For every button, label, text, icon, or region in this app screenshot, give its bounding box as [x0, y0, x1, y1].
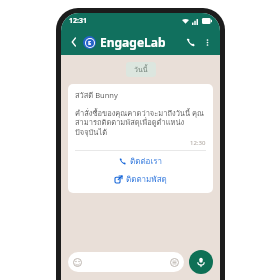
- staticText: ติดต่อเรา: [130, 155, 162, 168]
- staticText: 12:31: [69, 16, 87, 26]
- button[interactable]: More options: [200, 35, 214, 49]
- button[interactable]: Back: [67, 35, 81, 49]
- staticText: คำสั่งซื้อของคุณคาดว่าจะมาถึงวันนี้ คุณส…: [75, 107, 206, 139]
- staticText: วันนี้: [134, 64, 148, 75]
- button[interactable]: Voice message: [189, 250, 213, 274]
- button[interactable]: ติดตามพัสดุ: [75, 173, 206, 186]
- staticText: ติดตามพัสดุ: [126, 173, 167, 186]
- staticText: E: [88, 39, 92, 47]
- staticText: 12:30: [190, 139, 206, 147]
- button[interactable]: Call: [182, 34, 198, 50]
- button[interactable]: [68, 252, 184, 272]
- button[interactable]: ติดต่อเรา: [75, 155, 206, 168]
- staticText: สวัสดี Bunny: [75, 89, 118, 101]
- staticText: EngageLab: [100, 34, 166, 50]
